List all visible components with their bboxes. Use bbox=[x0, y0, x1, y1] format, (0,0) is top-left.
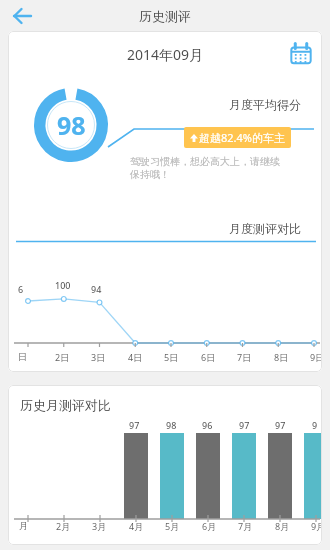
staticText: 9 bbox=[312, 419, 318, 431]
staticText: 5月 bbox=[165, 520, 180, 532]
staticText: 97 bbox=[129, 419, 140, 431]
staticText: 月度平均得分 bbox=[229, 97, 301, 112]
staticText: 5日 bbox=[164, 351, 179, 363]
staticText: 日 bbox=[18, 351, 27, 362]
staticText: 9日 bbox=[310, 351, 322, 363]
staticText: 历史月测评对比 bbox=[20, 397, 111, 413]
staticText: 3月 bbox=[92, 520, 107, 532]
staticText: 历史测评 bbox=[139, 8, 191, 24]
staticText: 超越82.4%的车主 bbox=[199, 130, 285, 145]
staticText: 4月 bbox=[129, 520, 144, 532]
staticText: 6 bbox=[18, 283, 24, 295]
staticText: 94 bbox=[91, 283, 102, 295]
button[interactable]: 超越82.4%的车主 bbox=[190, 130, 285, 145]
staticText: 月度测评对比 bbox=[229, 221, 301, 236]
staticText: 3日 bbox=[91, 351, 106, 363]
staticText: 驾驶习惯棒，想必高大上，请继续 保持哦！ bbox=[130, 155, 280, 181]
staticText: 100 bbox=[55, 279, 71, 291]
staticText: 2日 bbox=[55, 351, 70, 363]
staticText: 月 bbox=[19, 520, 28, 531]
staticText: 98 bbox=[166, 419, 177, 431]
button[interactable]: Calendar bbox=[288, 41, 314, 67]
staticText: 7日 bbox=[237, 351, 252, 363]
staticText: 7月 bbox=[238, 520, 253, 532]
staticText: 2月 bbox=[56, 520, 71, 532]
staticText: 8日 bbox=[274, 351, 289, 363]
staticText: 96 bbox=[202, 419, 213, 431]
staticText: 9月 bbox=[311, 520, 322, 532]
button[interactable]: Back bbox=[6, 0, 38, 31]
staticText: 97 bbox=[239, 419, 250, 431]
staticText: 6月 bbox=[202, 520, 217, 532]
staticText: 6日 bbox=[201, 351, 216, 363]
staticText: 97 bbox=[275, 419, 286, 431]
staticText: 8月 bbox=[275, 520, 290, 532]
staticText: 4日 bbox=[128, 351, 143, 363]
staticText: 2014年09月 bbox=[127, 45, 204, 64]
staticText: 98 bbox=[57, 108, 86, 142]
